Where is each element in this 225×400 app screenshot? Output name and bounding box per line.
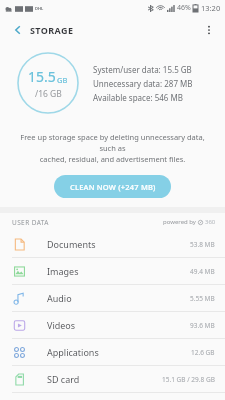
staticText: Images <box>47 265 79 277</box>
button[interactable]: Videos <box>0 312 225 338</box>
staticText: Videos <box>47 319 76 331</box>
button[interactable]: Documents <box>0 231 225 257</box>
staticText: Available space: 546 MB <box>93 92 183 103</box>
staticText: CLEAN NOW (+247 MB) <box>70 182 156 192</box>
staticText: 15.5 <box>28 67 56 86</box>
staticText: 46% <box>177 3 191 13</box>
staticText: 49.4 MB <box>190 267 215 276</box>
button[interactable]: Images <box>0 258 225 284</box>
staticText: /16 GB <box>35 88 62 100</box>
staticText: 360 <box>205 218 216 226</box>
staticText: 5.55 MB <box>190 294 215 303</box>
staticText: USER DATA <box>12 218 49 227</box>
staticText: GB <box>57 75 68 85</box>
staticText: DHL <box>35 6 44 11</box>
button[interactable]: CLEAN NOW (+247 MB) <box>54 175 171 198</box>
staticText: 93.6 MB <box>190 321 215 330</box>
staticText: 15.1 GB / 29.8 GB <box>162 375 215 384</box>
staticText: powered by <box>163 218 196 226</box>
button[interactable]: Applications <box>0 339 225 365</box>
button[interactable]: More options <box>199 20 219 40</box>
staticText: 53.8 MB <box>190 240 215 249</box>
staticText: System/user data: 15.5 GB <box>93 64 192 75</box>
button[interactable]: SD card <box>0 366 225 392</box>
staticText: Unnecessary data: 287 MB <box>93 78 193 89</box>
staticText: Documents <box>47 238 96 250</box>
button[interactable]: Audio <box>0 285 225 311</box>
staticText: Audio <box>47 292 72 304</box>
staticText: 13:20 <box>201 3 221 13</box>
staticText: STORAGE <box>30 24 74 36</box>
staticText: SD card <box>47 373 80 385</box>
staticText: Applications <box>47 346 99 358</box>
button[interactable]: Back <box>8 20 28 40</box>
staticText: 12.6 GB <box>191 348 215 357</box>
staticText: Free up storage space by deleting unnece… <box>14 132 211 164</box>
